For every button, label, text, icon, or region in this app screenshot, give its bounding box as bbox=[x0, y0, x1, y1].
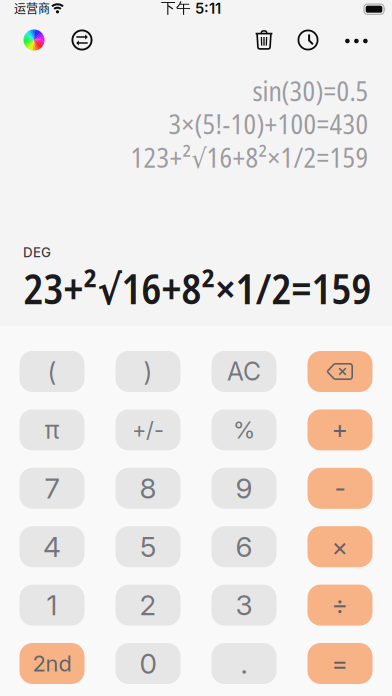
button[interactable]: 3×(5!-10)+100=430 bbox=[1, 106, 368, 142]
staticText: 0 bbox=[139, 647, 156, 680]
staticText: 2nd bbox=[32, 650, 71, 677]
staticText: ) bbox=[143, 356, 152, 387]
button[interactable] bbox=[345, 39, 368, 43]
staticText: 7 bbox=[44, 471, 59, 505]
button[interactable]: 8 bbox=[115, 468, 180, 509]
button[interactable]: × bbox=[307, 526, 372, 567]
button[interactable] bbox=[307, 351, 372, 392]
staticText: % bbox=[233, 416, 255, 444]
button[interactable]: 123+²√16+8²×1/2=159 bbox=[1, 139, 368, 176]
button[interactable]: 1 bbox=[19, 585, 84, 626]
button[interactable]: = bbox=[307, 643, 372, 684]
button[interactable]: + bbox=[307, 409, 372, 450]
staticText: 6 bbox=[235, 530, 252, 564]
button[interactable]: 7 bbox=[19, 468, 84, 509]
button[interactable]: % bbox=[211, 409, 276, 450]
staticText: 3 bbox=[235, 588, 252, 622]
button[interactable]: 3 bbox=[211, 585, 276, 626]
button[interactable]: +/- bbox=[115, 409, 180, 450]
button[interactable]: sin(30)=0.5 bbox=[1, 73, 368, 109]
button[interactable]: 2 bbox=[115, 585, 180, 626]
staticText: sin(30)=0.5 bbox=[252, 73, 368, 109]
button[interactable]: . bbox=[211, 643, 276, 684]
staticText: 4 bbox=[43, 530, 61, 564]
staticText: 运营商 bbox=[14, 0, 50, 17]
button[interactable]: 0 bbox=[115, 643, 180, 684]
button[interactable]: 6 bbox=[211, 526, 276, 567]
button[interactable]: - bbox=[307, 468, 372, 509]
staticText: AC bbox=[227, 357, 261, 386]
button[interactable]: 2nd bbox=[19, 643, 84, 684]
staticText: DEG bbox=[23, 244, 51, 260]
button[interactable] bbox=[297, 29, 318, 50]
button[interactable]: π bbox=[19, 409, 84, 450]
staticText: ÷ bbox=[331, 590, 348, 620]
button[interactable]: ) bbox=[115, 351, 180, 392]
staticText: 5 bbox=[140, 530, 156, 564]
staticText: ( bbox=[47, 356, 56, 387]
button[interactable]: 5 bbox=[115, 526, 180, 567]
staticText: 1 bbox=[46, 588, 57, 622]
staticText: 3×(5!-10)+100=430 bbox=[168, 106, 368, 142]
staticText: 8 bbox=[139, 471, 156, 505]
staticText: π bbox=[44, 415, 59, 445]
button[interactable]: 4 bbox=[19, 526, 84, 567]
staticText: 下午 5:11 bbox=[161, 0, 221, 17]
button[interactable]: AC bbox=[211, 351, 276, 392]
staticText: × bbox=[331, 531, 348, 562]
staticText: - bbox=[334, 473, 345, 504]
staticText: +/- bbox=[132, 417, 164, 443]
staticText: 23+²√16+8²×1/2=159 bbox=[23, 261, 371, 316]
button[interactable] bbox=[23, 29, 44, 50]
button[interactable] bbox=[255, 30, 273, 50]
button[interactable]: 9 bbox=[211, 468, 276, 509]
staticText: = bbox=[331, 648, 348, 679]
button[interactable]: ÷ bbox=[307, 585, 372, 626]
button[interactable] bbox=[71, 29, 92, 50]
button[interactable]: ( bbox=[19, 351, 84, 392]
staticText: 2 bbox=[139, 588, 156, 622]
staticText: 9 bbox=[235, 471, 252, 505]
staticText: + bbox=[331, 415, 348, 445]
staticText: . bbox=[240, 647, 247, 680]
staticText: 123+²√16+8²×1/2=159 bbox=[130, 139, 368, 176]
